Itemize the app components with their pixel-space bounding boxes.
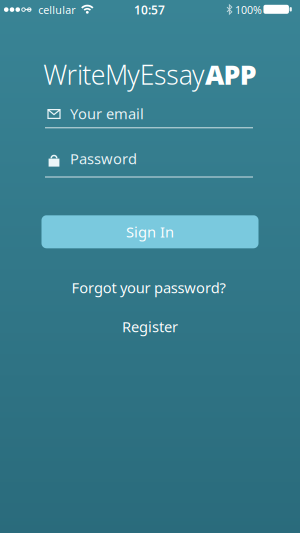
staticText: Password xyxy=(70,149,137,168)
staticText: Your email xyxy=(70,104,144,123)
staticText: 10:57 xyxy=(134,2,165,18)
staticText: Sign In xyxy=(126,222,174,242)
staticText: WriteMyEssay xyxy=(43,57,205,92)
button[interactable]: Your email xyxy=(42,102,258,132)
button[interactable]: Password xyxy=(42,148,258,178)
staticText: Register xyxy=(122,317,178,336)
staticText: APP xyxy=(205,57,257,92)
staticText: 100% xyxy=(235,3,262,17)
button[interactable]: Forgot your password? xyxy=(71,278,225,297)
button[interactable]: Register xyxy=(122,317,178,336)
staticText: cellular xyxy=(38,3,75,17)
button[interactable]: Sign In xyxy=(41,215,258,248)
staticText: Forgot your password? xyxy=(71,278,225,297)
